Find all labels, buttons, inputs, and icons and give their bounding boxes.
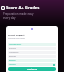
button[interactable]: Chemistry (8, 51, 56, 54)
button[interactable]: English (8, 59, 56, 62)
staticText: English (9, 59, 16, 62)
staticText: every day (3, 16, 16, 20)
button[interactable]: Back (1, 6, 5, 10)
staticText: Select Subject (8, 33, 25, 36)
staticText: Preparation made easy (3, 12, 34, 16)
staticText: Continue (27, 68, 37, 71)
staticText: Choose your topic (8, 37, 25, 40)
staticText: History (9, 63, 16, 66)
button[interactable]: Biology (8, 55, 56, 58)
button[interactable]: History (8, 63, 56, 66)
button[interactable]: Mathematics (8, 43, 56, 46)
staticText: Chemistry (9, 51, 19, 54)
staticText: Score A+ Grades (6, 5, 40, 10)
button[interactable]: Continue (8, 67, 56, 71)
staticText: Biology (9, 55, 17, 58)
staticText: Mathematics (9, 43, 22, 46)
staticText: Physics (9, 47, 16, 50)
button[interactable]: Physics (8, 47, 56, 50)
